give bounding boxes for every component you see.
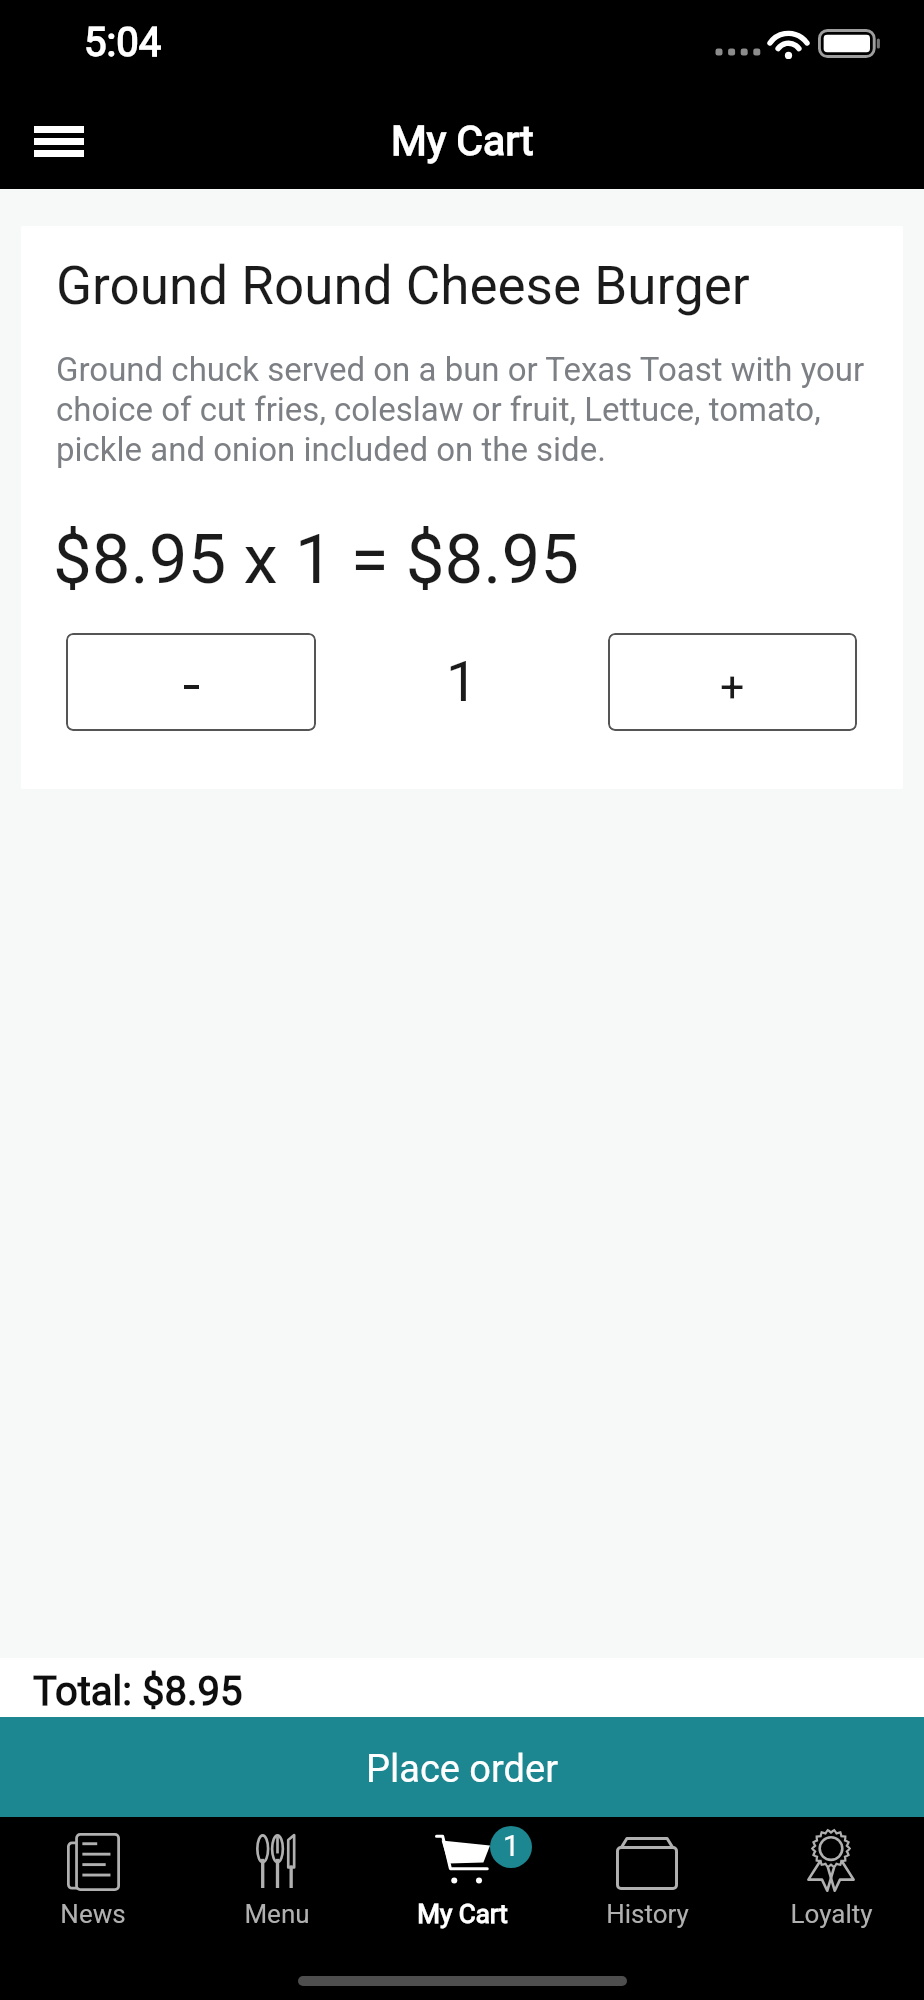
button[interactable]: Open navigation menu [0,88,120,189]
button[interactable]: + [608,633,857,731]
staticText: $8.95 x 1 = $8.95 [53,519,579,600]
staticText: My Cart [417,1899,508,1929]
staticText: + [720,662,745,712]
button[interactable]: 1 [370,1817,554,2000]
staticText: History [606,1899,689,1929]
staticText: Ground Round Cheese Burger [56,255,750,317]
button[interactable]: News [1,1817,185,2000]
button[interactable]: Place order [0,1717,924,1817]
staticText: News [60,1899,126,1929]
staticText: 1 [446,649,478,715]
staticText: Place order [366,1747,559,1792]
button[interactable]: Loyalty [739,1817,923,2000]
staticText: Menu [244,1899,310,1929]
staticText: Ground chuck served on a bun or Texas To… [56,350,874,469]
staticText: 5:04 [84,19,162,66]
button[interactable] [66,633,316,731]
staticText: Total: $8.95 [33,1668,243,1715]
button[interactable]: History [555,1817,739,2000]
button[interactable]: Menu [185,1817,369,2000]
staticText: Loyalty [790,1899,873,1929]
staticText: My Cart [391,117,534,165]
staticText: 1 [503,1829,520,1863]
